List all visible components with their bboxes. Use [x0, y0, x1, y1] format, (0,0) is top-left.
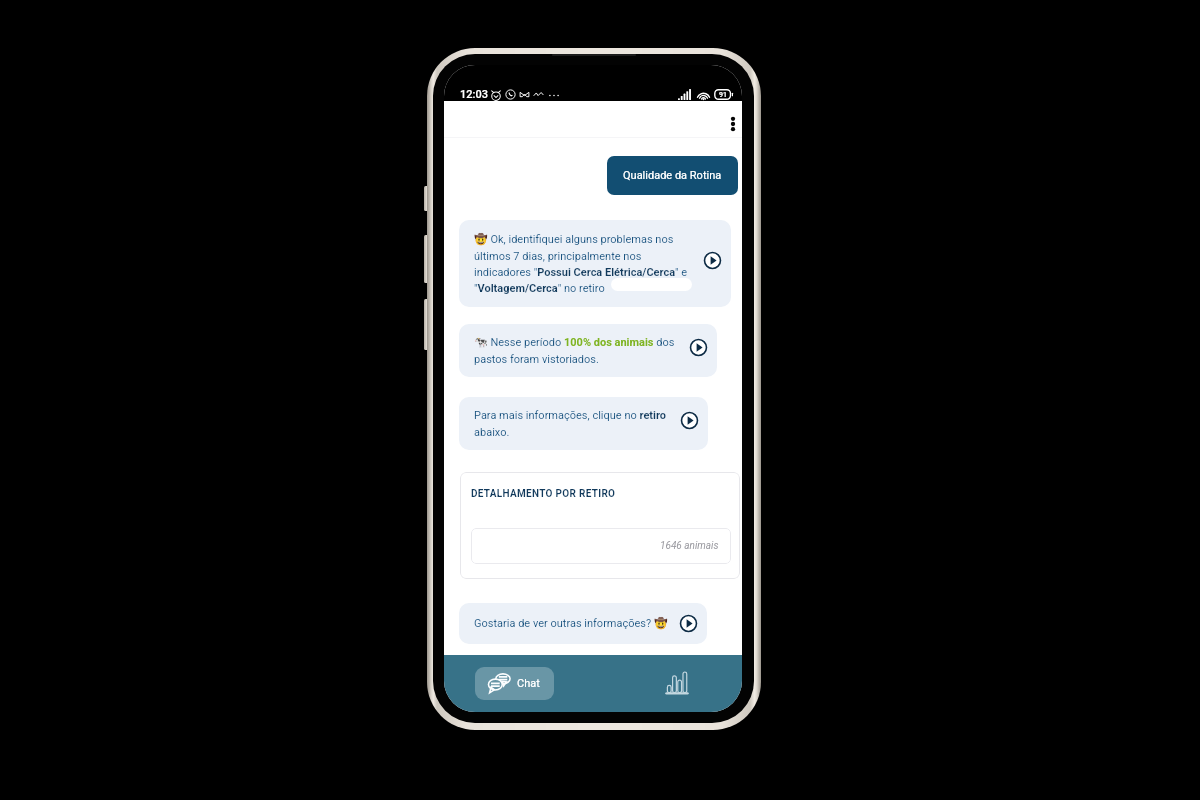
- staticText: 1646 animais: [660, 540, 719, 552]
- staticText: DETALHAMENTO POR RETIRO: [471, 488, 616, 500]
- staticText: Gostaria de ver outras informações? 🤠: [474, 617, 672, 630]
- staticText: 🤠 Ok, identifiquei alguns problemas nos …: [474, 233, 692, 294]
- button[interactable]: DETALHAMENTO POR RETIRO: [460, 472, 740, 579]
- staticText: Para mais informações, clique no retiro …: [474, 409, 671, 438]
- button[interactable]: Play audio: [679, 614, 698, 633]
- button[interactable]: Gostaria de ver outras informações? 🤠: [459, 603, 707, 644]
- staticText: Chat: [517, 677, 540, 690]
- button[interactable]: Play audio: [689, 338, 708, 357]
- button[interactable]: Play audio: [703, 251, 722, 270]
- button[interactable]: More options: [718, 109, 742, 139]
- staticText: 91: [719, 91, 727, 99]
- button[interactable]: Para mais informações, clique no retiro …: [459, 397, 708, 450]
- staticText: 🐄 Nesse período 100% dos animais dos pas…: [474, 336, 680, 365]
- button[interactable]: Qualidade da Rotina: [607, 156, 738, 195]
- button[interactable]: 🤠 Ok, identifiquei alguns problemas nos …: [459, 220, 731, 307]
- button[interactable]: Chat: [475, 667, 554, 700]
- button[interactable]: Reports: [649, 667, 705, 700]
- staticText: 12:03: [460, 88, 488, 101]
- staticText: Qualidade da Rotina: [623, 169, 722, 182]
- button[interactable]: Play audio: [680, 411, 699, 430]
- button[interactable]: 🐄 Nesse período 100% dos animais dos pas…: [459, 324, 717, 377]
